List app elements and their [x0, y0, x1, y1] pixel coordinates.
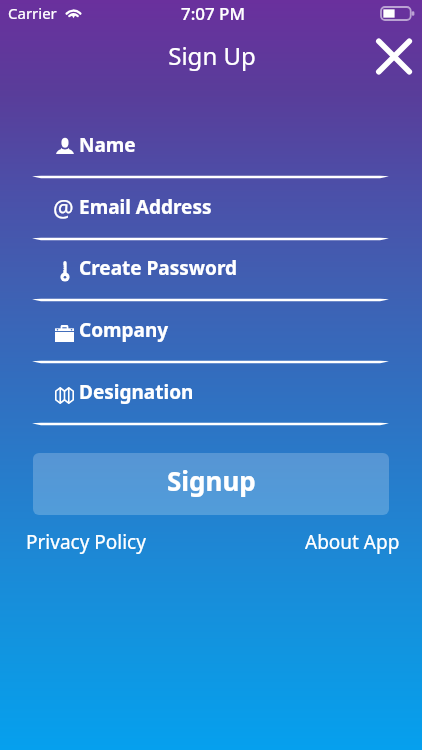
staticText: Create Password: [79, 255, 238, 287]
staticText: @: [53, 192, 72, 223]
button[interactable]: @: [32, 192, 389, 239]
staticText: About App: [305, 529, 400, 555]
staticText: Company: [79, 317, 169, 349]
staticText: Sign Up: [1, 39, 422, 72]
button[interactable]: Close: [368, 32, 418, 80]
button[interactable]: Create Password: [32, 253, 389, 300]
staticText: Carrier: [8, 3, 57, 23]
staticText: Signup: [167, 463, 256, 498]
staticText: 7:07 PM: [2, 2, 422, 25]
button[interactable]: About App: [305, 529, 400, 555]
button[interactable]: Designation: [32, 377, 389, 424]
staticText: Designation: [79, 379, 194, 411]
staticText: Name: [79, 132, 136, 164]
staticText: Email Address: [79, 194, 212, 226]
button[interactable]: Name: [32, 130, 389, 177]
button[interactable]: Company: [32, 315, 389, 362]
staticText: Privacy Policy: [26, 529, 146, 555]
button[interactable]: Privacy Policy: [26, 529, 146, 555]
button[interactable]: Signup: [33, 453, 389, 515]
